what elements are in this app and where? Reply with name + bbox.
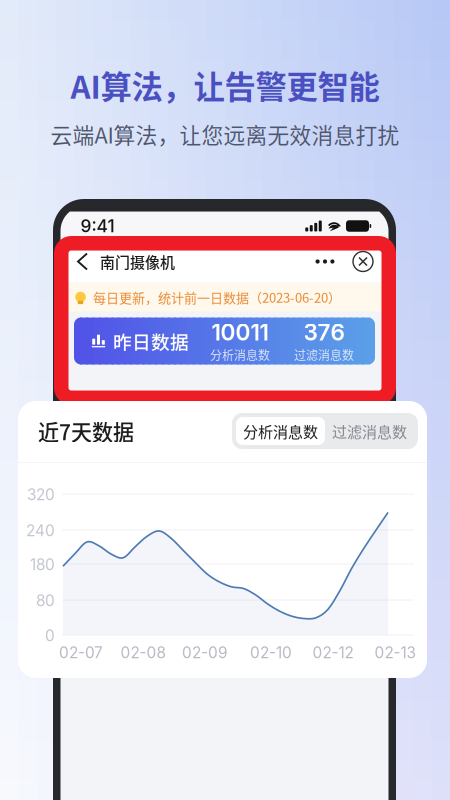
staticText: 320	[27, 485, 55, 504]
staticText: 180	[30, 555, 55, 574]
staticText: 02-09	[182, 643, 228, 662]
staticText: 20	[86, 542, 113, 568]
staticText: 每日更新，统计前一日数据（2023-06-20）	[93, 287, 341, 306]
button[interactable]: Back	[73, 253, 92, 269]
staticText: 10011	[211, 319, 268, 346]
staticText: 云端AI算法，让您远离无效消息打扰	[50, 118, 399, 150]
staticText: 昨日数据	[113, 327, 189, 354]
staticText: AI算法，让告警更智能	[70, 62, 379, 108]
staticText: 过滤消息数	[294, 346, 354, 363]
staticText: 20	[178, 542, 205, 568]
staticText: 376	[303, 319, 344, 346]
button[interactable]: 过滤消息数	[325, 417, 414, 445]
staticText: 02-07	[59, 643, 103, 662]
staticText: 南门摄像机	[100, 251, 175, 272]
staticText: 9:41	[80, 215, 114, 236]
button[interactable]: 分析消息数	[236, 417, 325, 445]
staticText: 02-12	[312, 643, 353, 662]
staticText: 0	[45, 626, 55, 645]
button[interactable]: More	[308, 247, 342, 275]
staticText: 分析消息数	[243, 420, 318, 442]
staticText: 分析消息数	[210, 346, 270, 363]
staticText: 02-08	[120, 643, 165, 662]
staticText: 近7天数据	[38, 416, 134, 446]
staticText: 02-13	[374, 643, 415, 662]
staticText: 02-10	[250, 643, 292, 662]
button[interactable]: Close	[350, 248, 376, 274]
staticText: 240	[26, 521, 55, 540]
staticText: 过滤消息数	[332, 420, 407, 442]
staticText: 80	[36, 591, 55, 610]
